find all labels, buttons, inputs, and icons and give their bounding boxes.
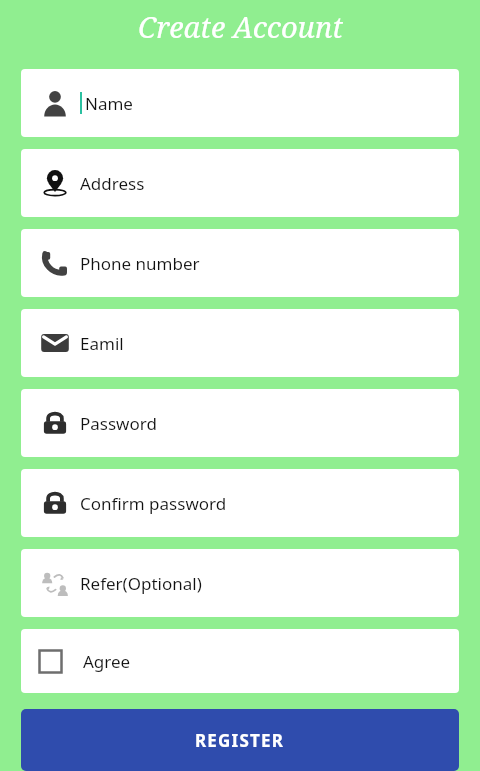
staticText: Name — [85, 92, 133, 115]
button[interactable]: Confirm password — [21, 469, 459, 537]
staticText: Eamil — [80, 332, 124, 355]
button[interactable]: Phone number — [21, 229, 459, 297]
staticText: Phone number — [80, 252, 200, 275]
button[interactable]: Refer(Optional) — [21, 549, 459, 617]
staticText: REGISTER — [195, 729, 285, 752]
button[interactable]: Eamil — [21, 309, 459, 377]
staticText: Confirm password — [80, 492, 227, 515]
button[interactable]: REGISTER — [21, 709, 459, 771]
staticText: Address — [80, 172, 145, 195]
staticText: Agree — [83, 650, 131, 673]
button[interactable]: Password — [21, 389, 459, 457]
staticText: Create Account — [138, 7, 343, 46]
button[interactable]: Address — [21, 149, 459, 217]
button[interactable]: Name — [21, 69, 459, 137]
staticText: Password — [80, 412, 157, 435]
button[interactable]: Agree — [21, 629, 459, 693]
staticText: Refer(Optional) — [80, 572, 202, 595]
